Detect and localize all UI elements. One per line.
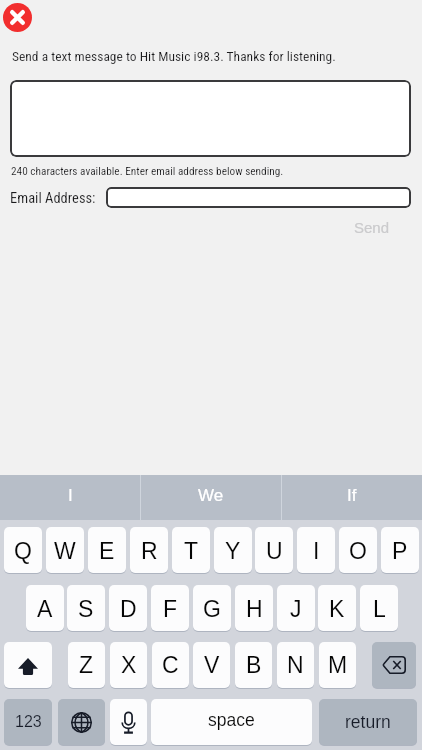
button[interactable]: G [193, 585, 231, 631]
button[interactable]: L [360, 585, 398, 631]
button[interactable]: I [0, 475, 140, 520]
staticText: Y [225, 538, 241, 564]
button[interactable]: If [282, 475, 422, 520]
button[interactable]: Close [3, 3, 32, 32]
button[interactable]: M [319, 642, 356, 688]
button[interactable]: N [277, 642, 314, 688]
staticText: We [198, 486, 224, 505]
staticText: J [290, 596, 302, 622]
button[interactable]: Y [214, 527, 252, 573]
button[interactable]: A [26, 585, 64, 631]
other: Backspace [382, 656, 406, 674]
staticText: B [246, 652, 262, 678]
staticText: R [141, 538, 158, 564]
button[interactable]: We [141, 475, 281, 520]
staticText: Send a text message to Hit Music i98.3. … [12, 48, 336, 64]
other: Switch keyboard [71, 712, 92, 733]
button[interactable]: Z [68, 642, 105, 688]
button[interactable]: E [88, 527, 126, 573]
staticText: E [99, 538, 115, 564]
button[interactable]: Send [354, 219, 390, 236]
staticText: space [208, 710, 255, 730]
staticText: K [329, 596, 345, 622]
button[interactable]: I [297, 527, 335, 573]
button[interactable]: X [110, 642, 147, 688]
button[interactable]: T [172, 527, 210, 573]
staticText: Z [79, 652, 94, 678]
staticText: H [246, 596, 263, 622]
staticText: G [203, 596, 221, 622]
button[interactable]: C [152, 642, 189, 688]
staticText: C [162, 652, 179, 678]
staticText: Q [14, 538, 32, 564]
button[interactable]: Switch keyboard [58, 699, 105, 745]
button[interactable]: H [235, 585, 273, 631]
button[interactable]: return [319, 699, 417, 745]
staticText: M [328, 652, 348, 678]
button[interactable]: W [46, 527, 84, 573]
button[interactable]: Backspace [372, 642, 416, 688]
staticText: I [68, 486, 73, 505]
button[interactable]: V [193, 642, 230, 688]
button[interactable]: F [151, 585, 189, 631]
button[interactable]: U [255, 527, 293, 573]
staticText: U [266, 538, 283, 564]
staticText: A [37, 596, 53, 622]
other: Voice input [120, 711, 137, 734]
button[interactable]: R [130, 527, 168, 573]
staticText: S [78, 596, 94, 622]
button[interactable]: Voice input [110, 699, 147, 745]
staticText: D [120, 596, 137, 622]
staticText: Send [354, 219, 390, 236]
button[interactable]: B [235, 642, 272, 688]
staticText: L [373, 596, 386, 622]
staticText: If [347, 486, 357, 505]
staticText: O [349, 538, 367, 564]
button[interactable] [106, 187, 411, 208]
button[interactable]: D [109, 585, 147, 631]
staticText: Email Address: [10, 190, 96, 207]
staticText: N [287, 652, 304, 678]
staticText: return [345, 712, 391, 732]
button[interactable]: S [67, 585, 105, 631]
button[interactable]: P [381, 527, 419, 573]
staticText: W [54, 538, 76, 564]
button[interactable] [10, 80, 411, 157]
staticText: 123 [15, 713, 42, 731]
staticText: F [163, 596, 178, 622]
staticText: 240 characters available. Enter email ad… [11, 165, 284, 178]
button[interactable]: K [318, 585, 356, 631]
button[interactable]: O [339, 527, 377, 573]
other: Shift [18, 658, 38, 675]
staticText: T [184, 538, 199, 564]
staticText: I [313, 538, 320, 564]
button[interactable]: J [277, 585, 315, 631]
button[interactable]: Q [4, 527, 42, 573]
staticText: P [392, 538, 408, 564]
button[interactable]: space [151, 699, 312, 745]
staticText: X [121, 652, 137, 678]
staticText: V [204, 652, 220, 678]
button[interactable]: 123 [4, 699, 52, 745]
button[interactable]: Shift [4, 642, 52, 688]
